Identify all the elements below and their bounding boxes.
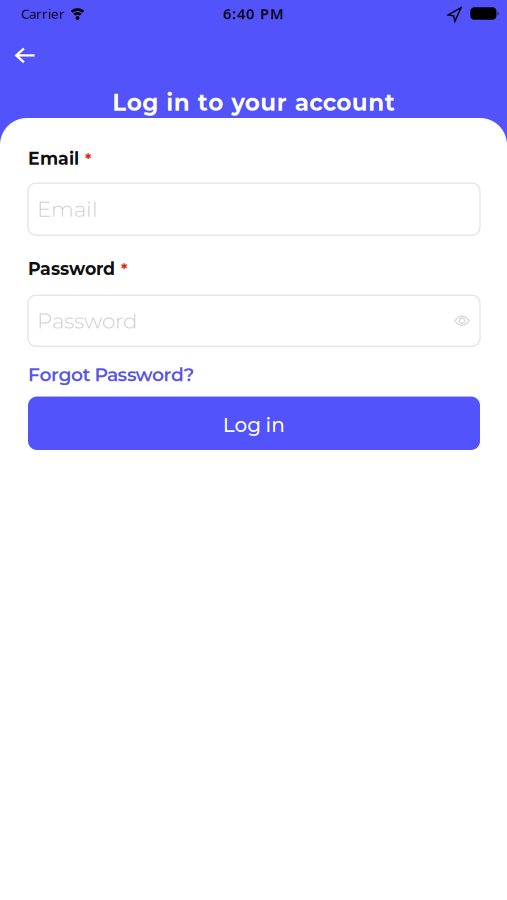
staticText: Forgot Password?: [28, 363, 194, 386]
button[interactable]: Forgot Password?: [28, 363, 194, 386]
staticText: Password: [28, 258, 115, 279]
staticText: Log in to your account: [112, 88, 395, 116]
button[interactable]: Password: [28, 295, 480, 346]
staticText: Log in: [223, 413, 285, 437]
button[interactable]: Email: [28, 183, 480, 235]
button[interactable]: Log in: [28, 396, 480, 450]
staticText: Carrier: [21, 5, 65, 22]
staticText: 6:40 PM: [223, 4, 284, 23]
staticText: *: [121, 260, 127, 278]
staticText: Password: [37, 308, 137, 334]
staticText: Email: [28, 148, 79, 169]
staticText: *: [85, 150, 91, 168]
button[interactable]: [9, 42, 41, 69]
staticText: Email: [37, 196, 98, 222]
